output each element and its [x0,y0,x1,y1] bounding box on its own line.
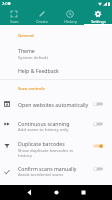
button[interactable]: Settings [84,7,112,25]
staticText: 2:08 [2,1,10,6]
button[interactable]: Recents [75,185,91,200]
staticText: Add scans to history only [18,126,69,132]
staticText: Scan [10,19,19,24]
button[interactable]: Toggle [91,164,105,174]
staticText: Continuous scanning [18,120,70,127]
staticText: Duplicate barcodes [18,140,65,147]
staticText: Scan controls [18,86,45,92]
staticText: History [64,19,77,24]
staticText: Help & Feedback [18,67,59,74]
button[interactable]: Scan [0,7,28,25]
button[interactable]: Create [28,7,56,25]
staticText: System default [18,54,48,60]
button[interactable]: Back [21,185,37,200]
button: Scan controls [0,86,112,93]
button[interactable]: Toggle [91,119,105,129]
staticText: Create [36,19,48,24]
button[interactable]: Home [48,185,64,200]
staticText: Open websites automatically [18,101,89,108]
button: General [0,33,112,40]
staticText: history [18,152,32,158]
staticText: Avoid accidental scans [18,171,64,177]
staticText: Show duplicate barcodes in [18,147,74,153]
button[interactable]: History [56,7,84,25]
staticText: Settings [91,19,106,24]
staticText: Theme [18,47,35,54]
staticText: Confirm scans manually [18,165,77,172]
button[interactable]: Toggle [91,141,105,151]
button[interactable]: Toggle [91,99,105,109]
staticText: General [18,33,34,39]
